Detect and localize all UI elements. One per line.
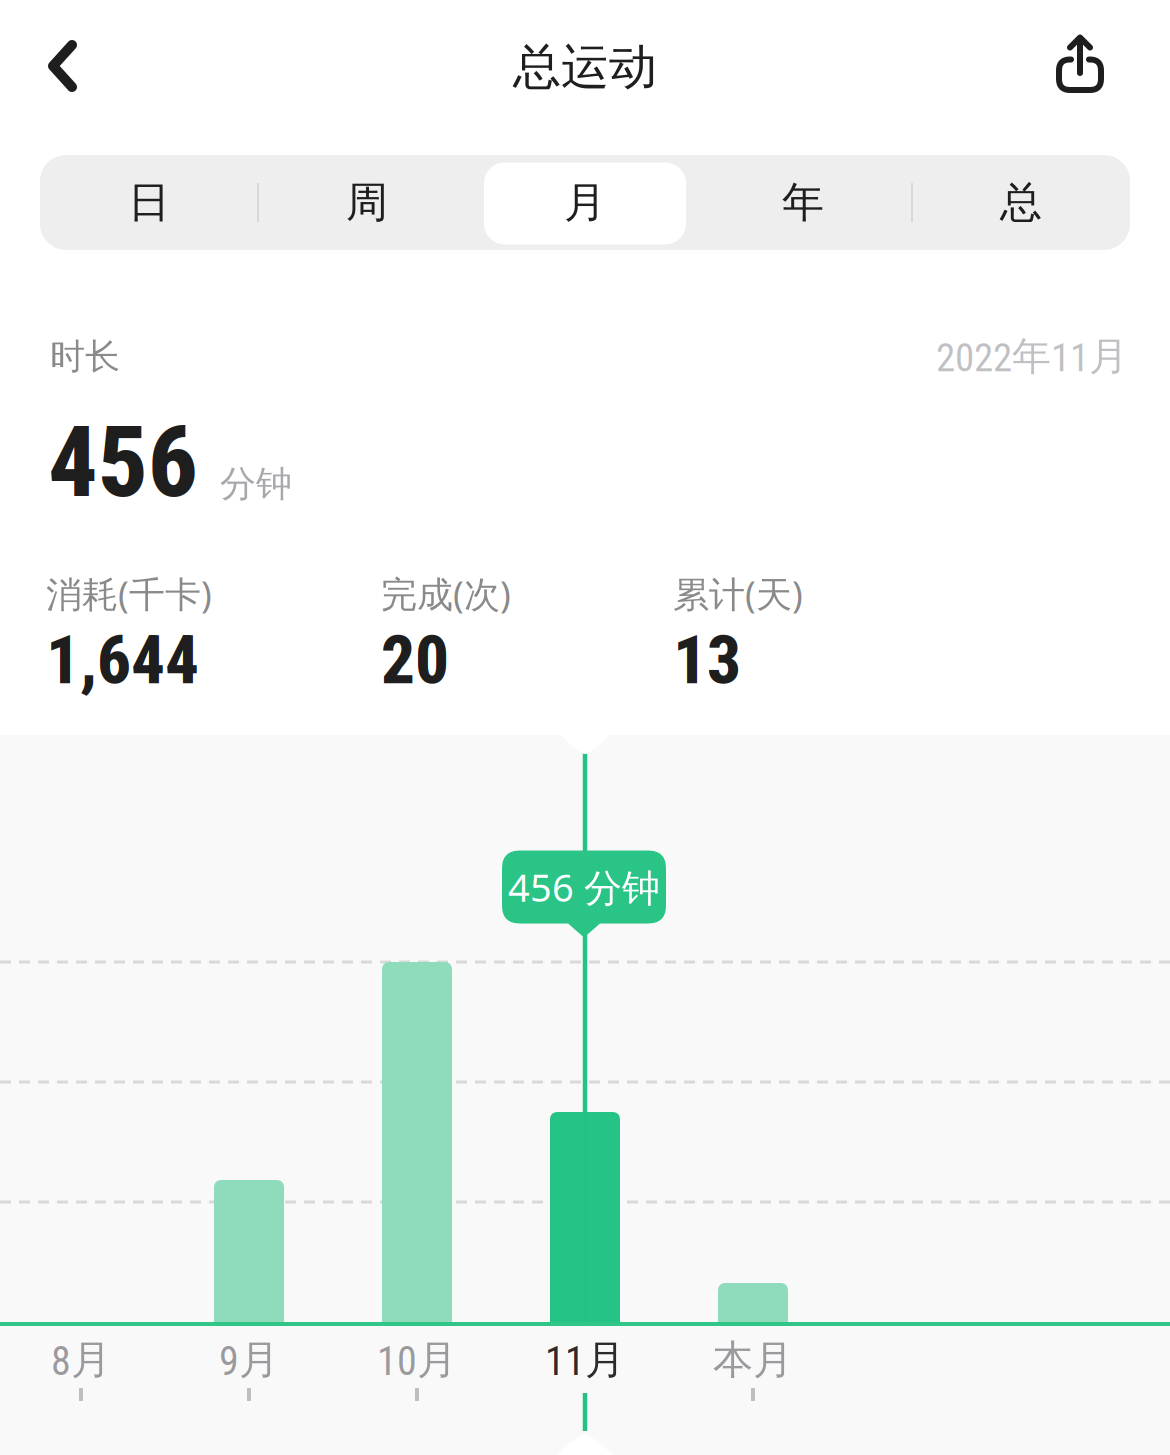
staticText: 年 [782, 176, 824, 229]
staticText: 8月 [51, 1335, 111, 1385]
button[interactable]: 月 [476, 155, 694, 250]
staticText: 本月 [713, 1335, 793, 1385]
staticText: 周 [346, 176, 388, 229]
button[interactable]: Share [1032, 26, 1170, 106]
staticText: 完成(次) [381, 569, 511, 618]
button[interactable]: 日 [40, 155, 258, 250]
staticText: 456 分钟 [508, 861, 660, 913]
staticText: 13 [673, 621, 741, 699]
staticText: 累计(天) [673, 569, 803, 618]
staticText: 10月 [377, 1335, 457, 1385]
button[interactable]: 年 [694, 155, 912, 250]
button[interactable]: 总 [912, 155, 1130, 250]
staticText: 时长 [50, 334, 120, 379]
staticText: 9月 [219, 1335, 279, 1385]
staticText: 总 [1000, 176, 1042, 229]
staticText: 分钟 [220, 461, 292, 507]
staticText: 总运动 [513, 37, 657, 97]
staticText: 2022年11月 [936, 332, 1128, 381]
staticText: 日 [128, 176, 170, 229]
staticText: 1,644 [46, 621, 199, 699]
staticText: 消耗(千卡) [46, 569, 212, 618]
staticText: 456 [48, 405, 198, 520]
staticText: 20 [381, 621, 449, 699]
button[interactable]: 周 [258, 155, 476, 250]
button[interactable]: Back [0, 26, 101, 106]
staticText: 11月 [545, 1335, 625, 1385]
staticText: 月 [564, 176, 606, 229]
